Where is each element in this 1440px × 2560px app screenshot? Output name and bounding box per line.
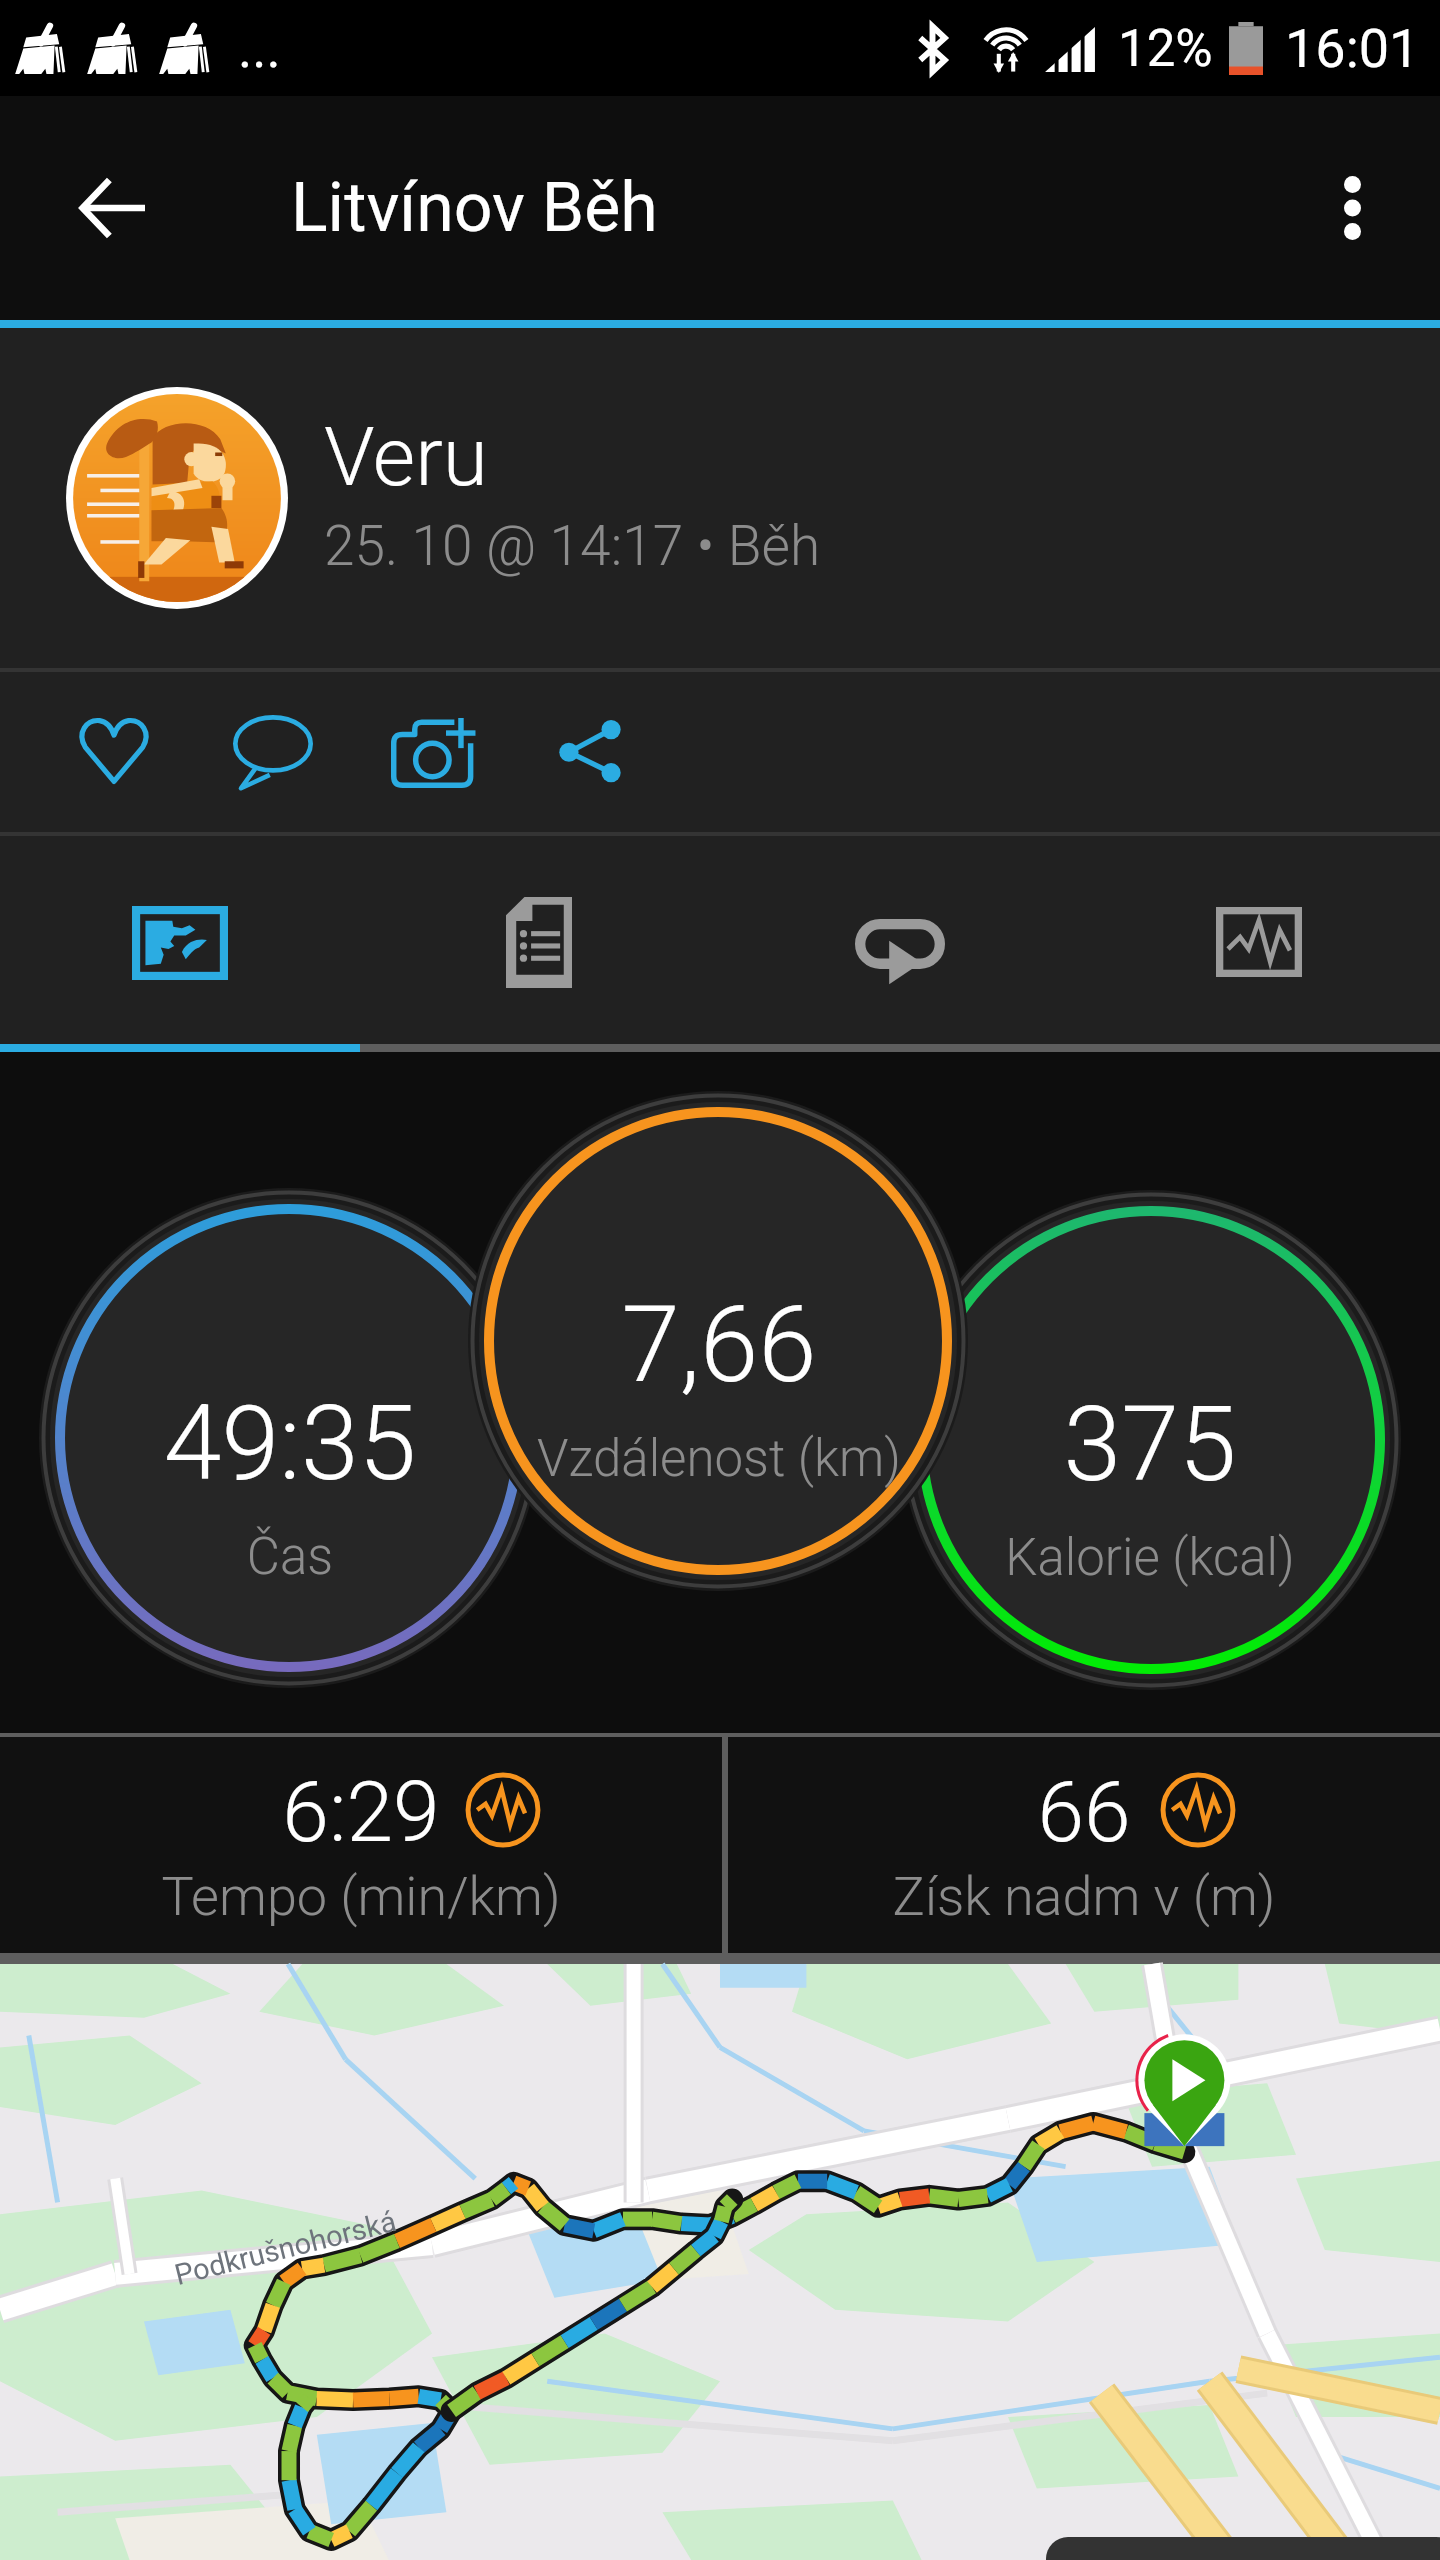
button[interactable]: 375 (800, 1384, 1440, 1506)
staticText: 12% (1118, 19, 1213, 79)
button[interactable]: More options (1292, 148, 1412, 268)
staticText: 16:01 (1285, 17, 1420, 80)
button[interactable]: Laps (720, 836, 1080, 1044)
staticText: Získ nadm v (m) (728, 1865, 1440, 1928)
staticText: Tempo (min/km) (0, 1865, 722, 1928)
staticText: 49:35 (0, 1383, 640, 1505)
staticText: 6:29 (0, 1763, 722, 1861)
button[interactable]: Map (0, 836, 360, 1044)
staticText: 66 (728, 1763, 1440, 1861)
button[interactable]: Comment (203, 672, 343, 832)
staticText: Kalorie (kcal) (800, 1528, 1440, 1588)
staticText: 375 (800, 1384, 1440, 1506)
staticText: Čas (0, 1527, 640, 1587)
staticText: Podkrušnohorská (171, 2204, 400, 2292)
staticText: ... (238, 17, 281, 80)
button[interactable]: 6:29 (0, 1737, 722, 1953)
staticText: Vzdálenost (km) (369, 1429, 1069, 1489)
button[interactable]: Map options (1046, 2537, 1440, 2560)
button[interactable]: Graphs (1080, 836, 1440, 1044)
button[interactable]: 7,66 (369, 1284, 1069, 1407)
button[interactable]: 49:35 (0, 1383, 640, 1505)
staticText: Veru (324, 409, 488, 505)
staticText: 7,66 (369, 1284, 1069, 1407)
button[interactable]: Details (360, 836, 720, 1044)
button[interactable]: Like (48, 672, 180, 832)
staticText: Litvínov Běh (291, 168, 658, 248)
button[interactable]: Add photo (361, 672, 509, 832)
staticText: 25. 10 @ 14:17 • Běh (324, 514, 821, 578)
button[interactable]: 66 (728, 1737, 1440, 1953)
button[interactable]: Share (529, 672, 651, 832)
button[interactable]: Veru (0, 328, 1440, 668)
button[interactable]: Back (52, 148, 172, 268)
